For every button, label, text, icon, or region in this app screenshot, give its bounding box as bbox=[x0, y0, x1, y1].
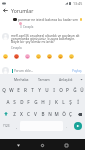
button[interactable]: Recents bbox=[61, 140, 71, 150]
button[interactable]: React bbox=[36, 54, 41, 59]
button[interactable]: Ü bbox=[78, 84, 85, 96]
button[interactable]: V bbox=[32, 108, 39, 120]
staticText: Ç bbox=[69, 111, 72, 117]
button[interactable]: O bbox=[57, 84, 64, 96]
staticText: İ bbox=[77, 99, 79, 105]
staticText: R bbox=[24, 87, 27, 93]
button[interactable]: React bbox=[58, 54, 63, 59]
staticText: Ğ bbox=[73, 87, 77, 93]
staticText: Paylaş bbox=[72, 69, 82, 73]
button[interactable]: Paylaş bbox=[71, 68, 83, 74]
button[interactable]: W bbox=[8, 84, 15, 96]
button[interactable]: P bbox=[64, 84, 71, 96]
staticText: 3 Cevapla bbox=[20, 25, 34, 29]
staticText: . bbox=[66, 124, 67, 129]
button[interactable]: More suggestions bbox=[77, 74, 85, 84]
button[interactable]: I bbox=[50, 84, 57, 96]
staticText: H bbox=[41, 99, 45, 105]
staticText: Yorum ekle… bbox=[14, 69, 34, 73]
staticText: K bbox=[55, 99, 58, 105]
button[interactable]: Ş bbox=[67, 96, 74, 108]
button[interactable]: ?123 bbox=[0, 120, 13, 132]
staticText: F bbox=[27, 99, 30, 105]
staticText: N bbox=[48, 111, 52, 117]
staticText: Y bbox=[38, 87, 41, 93]
staticText: V bbox=[34, 111, 37, 117]
button[interactable]: React bbox=[47, 54, 52, 59]
button[interactable]: M bbox=[53, 108, 60, 120]
staticText: I bbox=[53, 87, 55, 93]
staticText: G bbox=[34, 99, 38, 105]
button[interactable]: Tamam bbox=[33, 77, 55, 82]
button[interactable]: İ bbox=[74, 96, 81, 108]
button[interactable]: S bbox=[11, 96, 18, 108]
button[interactable]: Ğ bbox=[71, 84, 78, 96]
button[interactable]: Backspace bbox=[74, 108, 85, 120]
button[interactable]: , bbox=[13, 120, 20, 132]
button[interactable]: Ö bbox=[60, 108, 67, 120]
staticText: C bbox=[27, 111, 30, 117]
button[interactable]: Z bbox=[11, 108, 18, 120]
staticText: ?123 bbox=[3, 124, 10, 128]
staticText: Yorumlar bbox=[11, 7, 34, 14]
button[interactable]: K bbox=[53, 96, 60, 108]
button[interactable]: R bbox=[22, 84, 29, 96]
button[interactable]: F bbox=[25, 96, 32, 108]
button[interactable]: Q bbox=[0, 84, 8, 96]
button[interactable]: N bbox=[46, 108, 53, 120]
button[interactable]: React bbox=[14, 54, 19, 59]
button[interactable]: G bbox=[32, 96, 39, 108]
staticText: M bbox=[54, 111, 59, 117]
staticText: U bbox=[45, 87, 49, 93]
staticText: Anlaşıldı bbox=[59, 77, 73, 82]
button[interactable]: T bbox=[29, 84, 36, 96]
button[interactable]: B bbox=[39, 108, 46, 120]
staticText: W bbox=[9, 87, 14, 93]
button[interactable]: Cevapla bbox=[11, 46, 22, 50]
staticText: mefl.ozel36 onudnesl oltunbk ve paylaşın… bbox=[11, 33, 83, 44]
button[interactable]: Back bbox=[13, 140, 23, 150]
button[interactable]: Y bbox=[36, 84, 43, 96]
staticText: B bbox=[41, 111, 45, 117]
staticText: T bbox=[31, 87, 34, 93]
staticText: S bbox=[13, 99, 16, 105]
button[interactable]: React bbox=[69, 54, 74, 59]
button[interactable]: E bbox=[15, 84, 22, 96]
button[interactable]: Back bbox=[0, 6, 11, 14]
button[interactable]: J bbox=[46, 96, 53, 108]
button[interactable]: L bbox=[60, 96, 67, 108]
staticText: Ü bbox=[80, 87, 84, 93]
button[interactable]: Anlaşıldı bbox=[55, 77, 77, 82]
button[interactable]: C bbox=[25, 108, 32, 120]
button[interactable]: Home bbox=[37, 140, 47, 150]
staticText: ponmar ne istedi bakınca bu kadar sen bbox=[18, 17, 79, 21]
button[interactable]: D bbox=[18, 96, 25, 108]
button[interactable]: Send bbox=[74, 122, 82, 130]
staticText: D bbox=[20, 99, 24, 105]
button[interactable]: H bbox=[39, 96, 46, 108]
staticText: L bbox=[62, 99, 65, 105]
staticText: P bbox=[66, 87, 69, 93]
button[interactable]: X bbox=[18, 108, 25, 120]
staticText: Merhaba bbox=[14, 77, 29, 82]
button[interactable]: React bbox=[25, 54, 30, 59]
staticText: Z bbox=[13, 111, 16, 117]
button[interactable]: U bbox=[43, 84, 50, 96]
staticText: Tamam bbox=[38, 77, 50, 82]
staticText: Ş bbox=[69, 99, 72, 105]
button[interactable]: Ç bbox=[67, 108, 74, 120]
staticText: Cevapla bbox=[11, 46, 22, 50]
button[interactable]: React bbox=[3, 54, 8, 59]
staticText: J bbox=[49, 99, 51, 105]
staticText: O bbox=[59, 87, 63, 93]
button[interactable]: Shift bbox=[0, 108, 11, 120]
button[interactable]: A bbox=[4, 96, 11, 108]
staticText: X bbox=[20, 111, 23, 117]
staticText: Ö bbox=[62, 111, 66, 117]
staticText: Q bbox=[2, 87, 6, 93]
staticText: 13:45 bbox=[73, 1, 83, 6]
staticText: A bbox=[6, 99, 10, 105]
button[interactable]: Merhaba bbox=[10, 77, 33, 82]
